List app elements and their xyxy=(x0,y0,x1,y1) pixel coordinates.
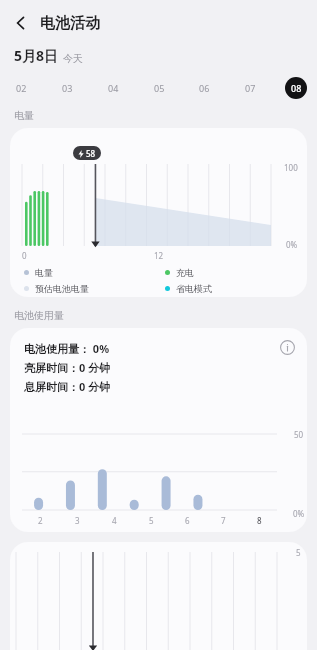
button[interactable]: 5 xyxy=(10,542,307,650)
button[interactable]: Information xyxy=(277,337,297,357)
button[interactable]: 58 xyxy=(10,128,307,297)
staticText: 2 xyxy=(38,515,43,526)
staticText: 8 xyxy=(257,515,262,526)
staticText: 4 xyxy=(112,515,117,526)
staticText: 预估电池电量 xyxy=(35,283,89,294)
button[interactable]: 预估电池电量 xyxy=(24,283,165,294)
staticText: 3 xyxy=(75,515,80,526)
staticText: 电池使用量： 0% xyxy=(24,341,110,356)
staticText: 充电 xyxy=(176,267,194,278)
staticText: 今天 xyxy=(63,52,83,65)
button[interactable]: 08 xyxy=(285,77,307,99)
staticText: 0% xyxy=(286,239,298,250)
staticText: 07 xyxy=(245,82,256,94)
staticText: 7 xyxy=(221,515,226,526)
staticText: 电量 xyxy=(14,109,34,122)
staticText: 电池使用量 xyxy=(14,309,64,322)
staticText: 6 xyxy=(185,515,190,526)
button[interactable]: 04 xyxy=(102,77,124,99)
staticText: 03 xyxy=(62,82,73,94)
staticText: 省电模式 xyxy=(176,283,212,294)
staticText: 5 xyxy=(296,547,301,558)
staticText: 100 xyxy=(284,162,298,173)
staticText: 5 xyxy=(149,515,154,526)
button[interactable]: 07 xyxy=(239,77,261,99)
staticText: 06 xyxy=(199,82,210,94)
staticText: 电量 xyxy=(35,267,53,278)
staticText: 5月8日 xyxy=(14,46,59,65)
staticText: 02 xyxy=(16,82,27,94)
button[interactable]: 电池使用量： 0% xyxy=(10,328,307,532)
staticText: 05 xyxy=(154,82,165,94)
staticText: 0% xyxy=(293,508,305,519)
button[interactable]: 03 xyxy=(56,77,78,99)
staticText: 12 xyxy=(154,250,164,261)
button[interactable]: 电量 xyxy=(24,267,165,278)
staticText: 0 xyxy=(22,250,27,261)
staticText: 电池活动 xyxy=(40,14,100,33)
button[interactable]: 02 xyxy=(10,77,32,99)
button[interactable]: Back xyxy=(6,8,36,38)
staticText: 58 xyxy=(86,148,96,159)
button[interactable]: 06 xyxy=(193,77,215,99)
staticText: 50 xyxy=(294,429,304,440)
staticText: 08 xyxy=(291,82,302,94)
button[interactable]: 省电模式 xyxy=(165,283,307,294)
staticText: 息屏时间：0 分钟 xyxy=(24,379,111,394)
staticText: 亮屏时间：0 分钟 xyxy=(24,360,111,375)
staticText: 04 xyxy=(108,82,119,94)
button[interactable]: 05 xyxy=(148,77,170,99)
button[interactable]: 充电 xyxy=(165,267,307,278)
